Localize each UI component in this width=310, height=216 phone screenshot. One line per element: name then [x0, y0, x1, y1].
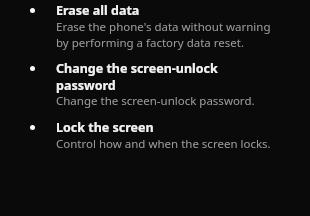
staticText: Erase all data — [56, 2, 140, 19]
staticText: Change the screen-unlock password — [56, 60, 274, 93]
staticText: Control how and when the screen locks. — [56, 136, 271, 152]
button[interactable]: Erase all data — [0, 2, 310, 50]
staticText: Erase the phone's data without warning b… — [56, 19, 274, 50]
staticText: Change the screen-unlock password. — [56, 93, 255, 109]
button[interactable]: Change the screen-unlock password — [0, 60, 310, 109]
staticText: Lock the screen — [56, 119, 154, 136]
button[interactable]: Lock the screen — [0, 119, 310, 152]
